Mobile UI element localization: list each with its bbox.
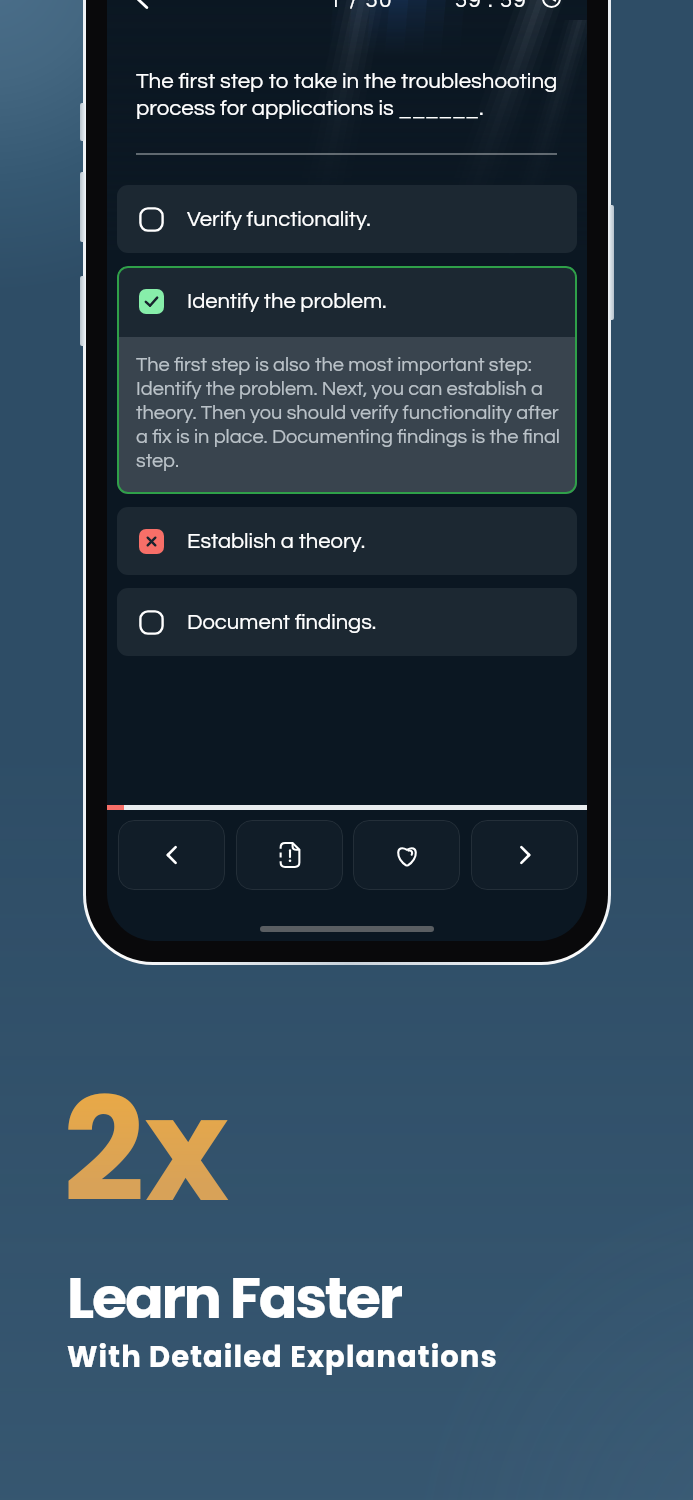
- staticText: 1 / 50: [329, 0, 394, 12]
- staticText: 2x: [63, 1050, 229, 1250]
- button[interactable]: Verify functionality.: [117, 185, 577, 253]
- button[interactable]: Identify the problem.: [117, 266, 577, 494]
- button[interactable]: Previous: [118, 820, 225, 890]
- button[interactable]: Report question: [236, 820, 343, 890]
- staticText: Learn Faster: [67, 1258, 401, 1338]
- staticText: Verify functionality.: [187, 208, 371, 231]
- button[interactable]: Document findings.: [117, 588, 577, 656]
- staticText: 59 : 59: [455, 0, 528, 12]
- staticText: The first step is also the most importan…: [136, 355, 565, 471]
- button[interactable]: Back: [123, 0, 161, 17]
- staticText: Document findings.: [187, 611, 377, 634]
- staticText: Identify the problem.: [187, 290, 387, 313]
- staticText: The first step to take in the troublesho…: [136, 70, 564, 119]
- staticText: Establish a theory.: [187, 530, 366, 553]
- button[interactable]: Next: [471, 820, 578, 890]
- button[interactable]: Establish a theory.: [117, 507, 577, 575]
- staticText: With Detailed Explanations: [67, 1337, 498, 1378]
- button[interactable]: Favourite: [353, 820, 460, 890]
